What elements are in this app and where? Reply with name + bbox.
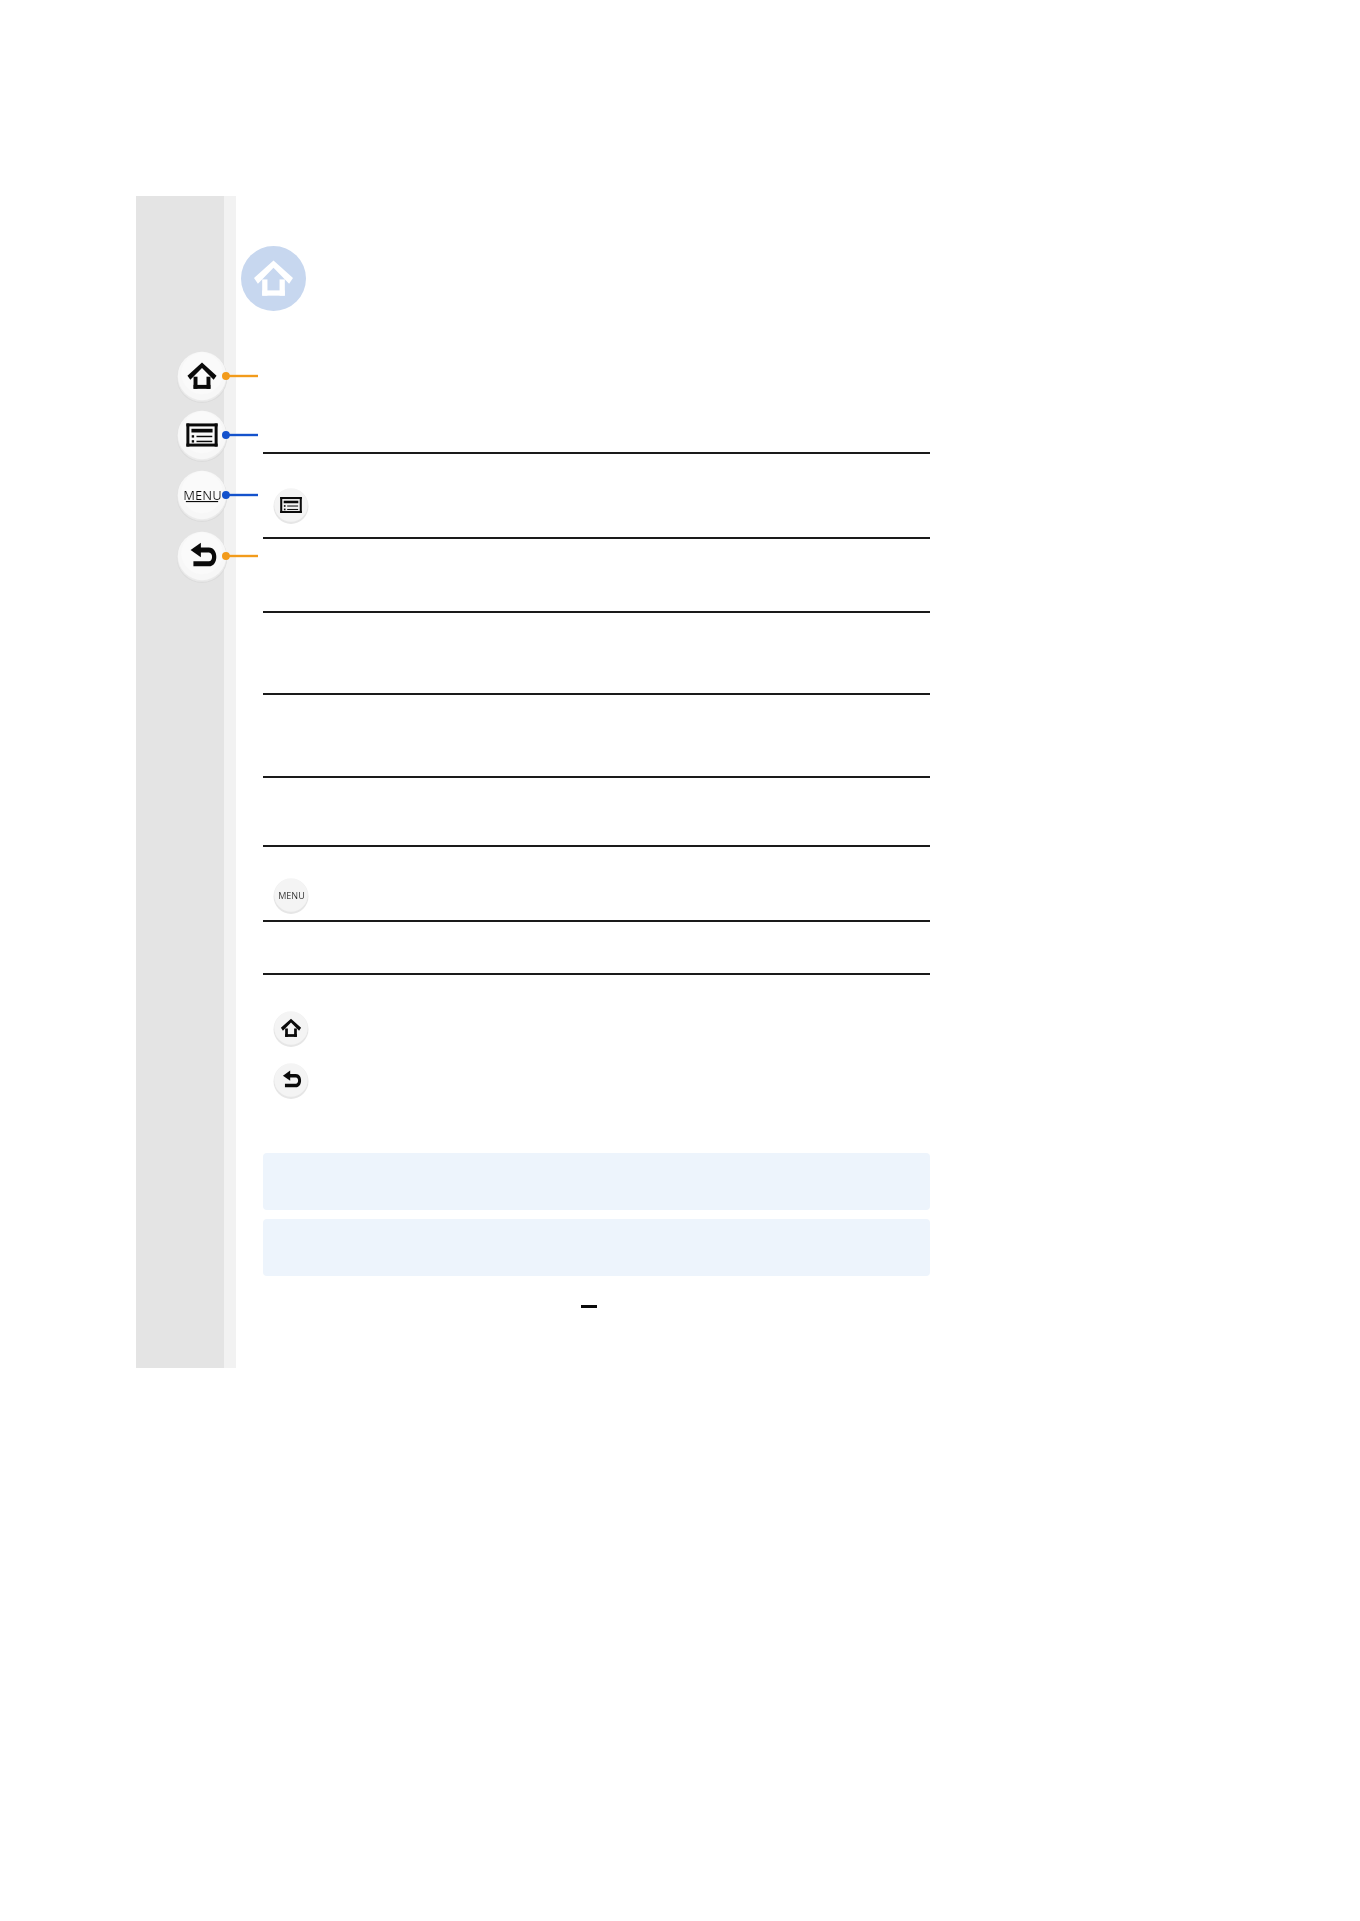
button[interactable]: Back: [273, 1062, 309, 1098]
button[interactable]: MENU: [176, 469, 228, 521]
button[interactable]: Back: [176, 530, 228, 582]
button[interactable]: MENU: [273, 877, 309, 913]
button[interactable]: Menu panel: [176, 409, 228, 461]
button[interactable]: Home: [273, 1010, 309, 1046]
staticText: MENU: [183, 486, 222, 504]
button[interactable]: Home section: [241, 246, 306, 311]
button[interactable]: Menu panel: [273, 487, 309, 523]
staticText: MENU: [278, 889, 305, 901]
button[interactable]: Home: [176, 350, 228, 402]
